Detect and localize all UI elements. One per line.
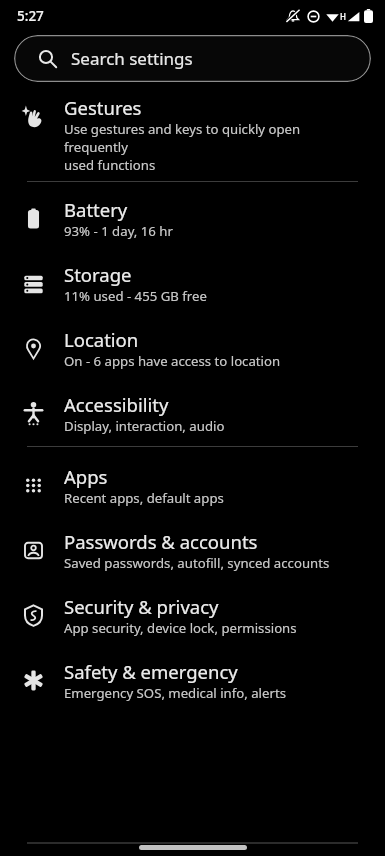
staticText: Accessibility [64,392,169,417]
button[interactable]: Safety and emergency [0,659,385,702]
other: Location [22,337,45,360]
button[interactable]: Security and privacy [0,594,385,637]
staticText: 11% used - 455 GB free [64,287,207,305]
other: Gestures [22,105,45,128]
other: Safety and emergency [22,669,45,692]
staticText: Security & privacy [64,594,219,619]
staticText: Use gestures and keys to quickly open fr… [64,120,365,174]
staticText: 5:27 [17,7,44,25]
other: Accessibility [22,402,45,425]
staticText: 93% - 1 day, 16 hr [64,222,173,240]
button[interactable]: Storage [0,262,385,305]
staticText: Passwords & accounts [64,529,258,554]
staticText: Battery [64,197,128,222]
staticText: Apps [64,464,108,489]
other: Battery [22,207,45,230]
staticText: Gestures [64,95,142,120]
button[interactable]: Apps [0,464,385,507]
button[interactable]: Passwords and accounts [0,529,385,572]
other: Security and privacy [22,604,45,627]
other: Passwords and accounts [22,539,45,562]
button[interactable]: Search settings [14,35,371,82]
other: Apps [22,474,45,497]
button[interactable]: Gestures [0,95,385,174]
staticText: Search settings [71,47,193,70]
staticText: Display, interaction, audio [64,417,225,435]
staticText: Storage [64,262,132,287]
button[interactable]: Battery [0,197,385,240]
staticText: Emergency SOS, medical info, alerts [64,684,286,702]
staticText: App security, device lock, permissions [64,619,297,637]
staticText: H [340,11,346,22]
staticText: Location [64,327,139,352]
staticText: Recent apps, default apps [64,489,224,507]
button[interactable]: Location [0,327,385,370]
staticText: Saved passwords, autofill, synced accoun… [64,554,330,572]
button[interactable]: Accessibility [0,392,385,435]
staticText: Safety & emergency [64,659,238,684]
other: Storage [22,272,45,295]
staticText: On - 6 apps have access to location [64,352,281,370]
